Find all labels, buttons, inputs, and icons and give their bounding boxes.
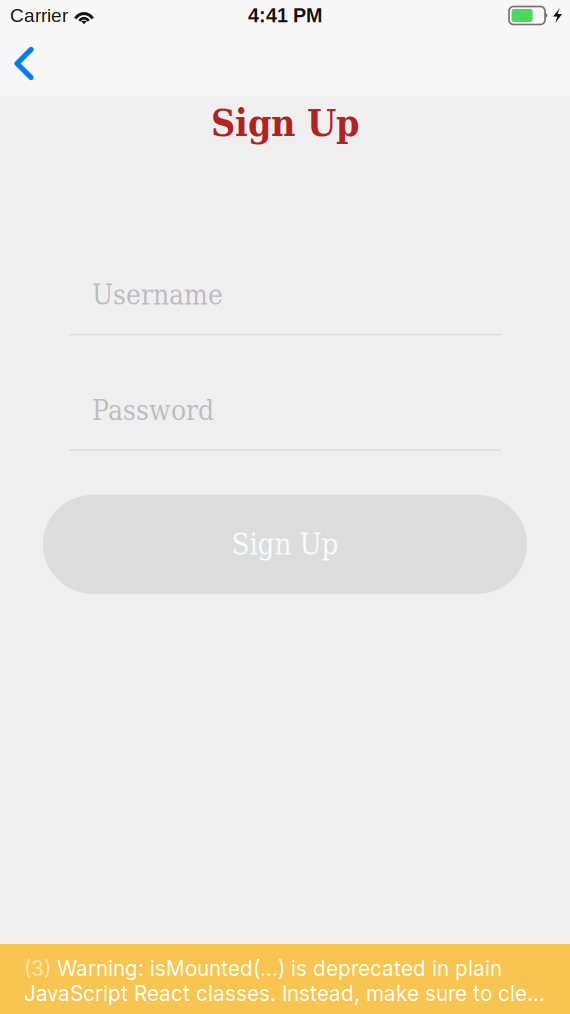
staticText: JavaScript React classes. Instead, make … <box>24 981 545 1006</box>
button[interactable]: Sign Up <box>43 495 527 594</box>
staticText: Username <box>92 279 223 311</box>
staticText: Password <box>92 394 214 427</box>
staticText: Sign Up <box>211 101 359 145</box>
button[interactable]: Back <box>0 31 56 95</box>
staticText: Carrier <box>10 5 68 26</box>
staticText: Warning: isMounted(...) is deprecated in… <box>51 956 502 981</box>
button[interactable]: (3) <box>0 944 570 1014</box>
staticText: (3) <box>24 956 51 981</box>
staticText: 4:41 PM <box>248 4 322 26</box>
staticText: Sign Up <box>231 527 338 561</box>
